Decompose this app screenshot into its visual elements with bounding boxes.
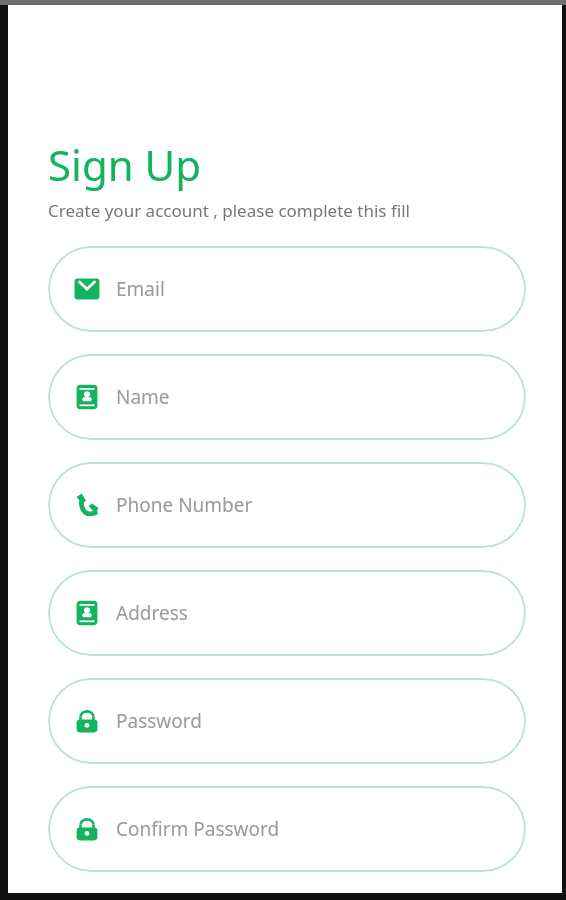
staticText: Password bbox=[116, 708, 202, 734]
staticText: Name bbox=[116, 384, 170, 410]
button[interactable]: Confirm Password bbox=[48, 786, 526, 872]
button[interactable]: Name bbox=[48, 354, 526, 440]
staticText: Phone Number bbox=[116, 492, 253, 518]
button[interactable]: Email bbox=[48, 246, 526, 332]
staticText: Email bbox=[116, 276, 165, 302]
staticText: Address bbox=[116, 600, 188, 626]
staticText: Create your account , please complete th… bbox=[48, 199, 410, 222]
staticText: Confirm Password bbox=[116, 816, 280, 842]
button[interactable]: Password bbox=[48, 678, 526, 764]
staticText: Sign Up bbox=[48, 136, 202, 193]
button[interactable]: Phone Number bbox=[48, 462, 526, 548]
button[interactable]: Address bbox=[48, 570, 526, 656]
